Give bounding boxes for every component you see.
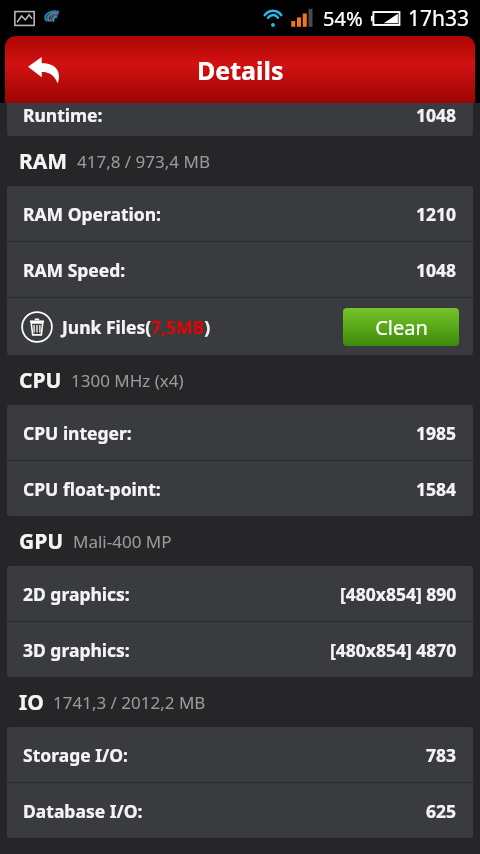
staticText: 783 [426,743,457,767]
staticText: Database I/O: [23,799,143,823]
button[interactable]: Clean [343,308,459,346]
staticText: RAM Operation: [23,202,162,226]
button[interactable]: CPU float-point: [7,461,473,516]
button[interactable]: Junk Files(7,5MB) [7,298,473,355]
button[interactable]: 3D graphics: [7,622,473,677]
staticText: 54% [323,5,363,32]
button[interactable]: Storage I/O: [7,727,473,782]
staticText: RAM [19,147,68,176]
staticText: Clean [375,314,428,341]
staticText: 1584 [416,477,457,501]
button[interactable]: RAM Operation: [7,186,473,241]
staticText: 1210 [416,202,457,226]
staticText: Runtime: [23,103,103,127]
staticText: 625 [426,799,457,823]
staticText: 417,8 / 973,4 MB [77,150,210,173]
staticText: 2D graphics: [23,582,130,606]
staticText: 17h33 [408,4,470,33]
staticText: CPU integer: [23,421,132,445]
staticText: 1300 MHz (x4) [71,369,184,392]
staticText: 1048 [416,258,457,282]
staticText: CPU float-point: [23,477,161,501]
button[interactable]: Database I/O: [7,783,473,838]
staticText: CPU [19,366,62,395]
staticText: Storage I/O: [23,743,129,767]
staticText: RAM Speed: [23,258,126,282]
button[interactable]: Runtime: [7,103,473,136]
staticText: 1741,3 / 2012,2 MB [53,691,206,714]
staticText: Details [197,53,284,87]
button[interactable]: RAM Speed: [7,242,473,297]
button[interactable]: Back [5,36,83,103]
staticText: [480x854] 4870 [330,638,457,662]
button[interactable]: 2D graphics: [7,566,473,621]
staticText: 3D graphics: [23,638,130,662]
staticText: GPU [19,527,64,556]
staticText: Junk Files(7,5MB) [62,315,211,339]
button[interactable]: CPU integer: [7,405,473,460]
staticText: 1048 [416,103,457,127]
staticText: [480x854] 890 [340,582,457,606]
staticText: IO [19,688,44,717]
staticText: Mali-400 MP [73,530,172,553]
staticText: 1985 [416,421,457,445]
